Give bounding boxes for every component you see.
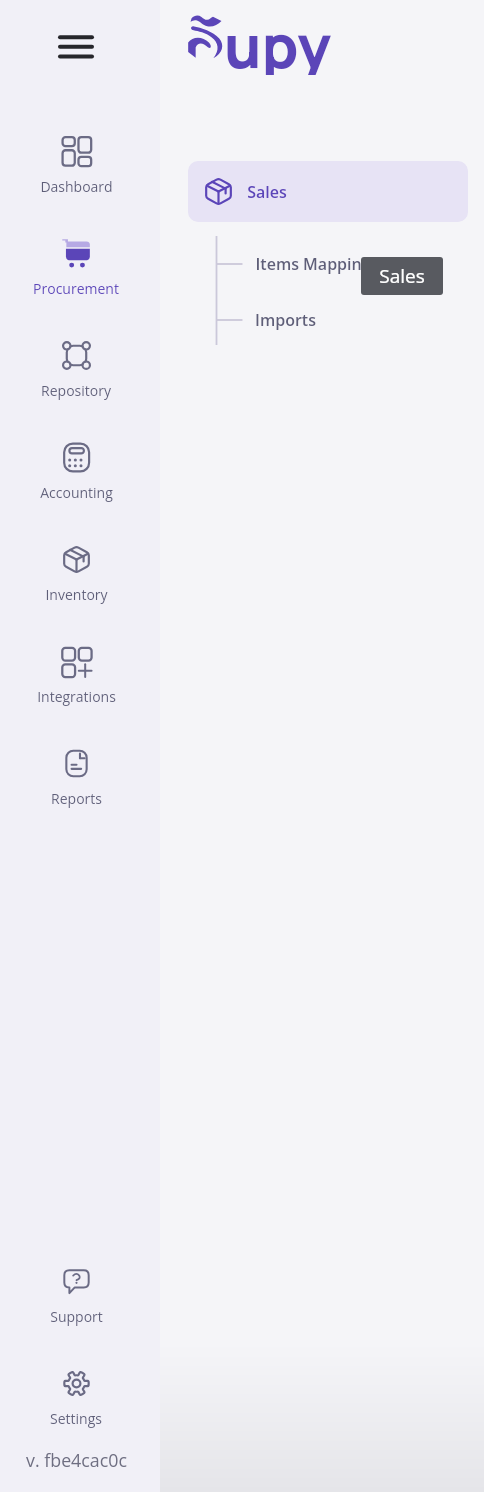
staticText: Items Mapping bbox=[255, 253, 371, 275]
staticText: Integrations bbox=[37, 687, 116, 706]
button[interactable]: Settings bbox=[0, 1353, 156, 1429]
staticText: upy bbox=[224, 5, 331, 75]
button[interactable]: Integrations bbox=[0, 631, 156, 707]
button[interactable]: Imports bbox=[255, 306, 316, 334]
button[interactable]: Support bbox=[0, 1251, 156, 1327]
staticText: Repository bbox=[41, 381, 111, 400]
button[interactable]: Dashboard bbox=[0, 121, 156, 197]
button[interactable]: Accounting bbox=[0, 427, 156, 503]
other: Supy bbox=[188, 14, 338, 84]
button[interactable]: Repository bbox=[0, 325, 156, 401]
button[interactable]: Sales bbox=[188, 161, 468, 222]
staticText: Accounting bbox=[40, 483, 113, 502]
staticText: Reports bbox=[51, 789, 102, 808]
staticText: Support bbox=[50, 1307, 103, 1326]
button[interactable]: Procurement bbox=[0, 223, 156, 299]
staticText: Inventory bbox=[45, 585, 108, 604]
staticText: Imports bbox=[255, 309, 316, 331]
staticText: Sales bbox=[379, 263, 425, 289]
staticText: Settings bbox=[50, 1409, 102, 1428]
button[interactable]: Menu bbox=[38, 18, 114, 74]
button[interactable]: Reports bbox=[0, 733, 156, 809]
staticText: Procurement bbox=[33, 279, 119, 298]
button[interactable]: Items Mapping bbox=[255, 250, 371, 278]
staticText: Dashboard bbox=[40, 177, 113, 196]
staticText: Sales bbox=[247, 181, 287, 203]
button[interactable]: Inventory bbox=[0, 529, 156, 605]
staticText: v. fbe4cac0c bbox=[26, 1448, 127, 1472]
